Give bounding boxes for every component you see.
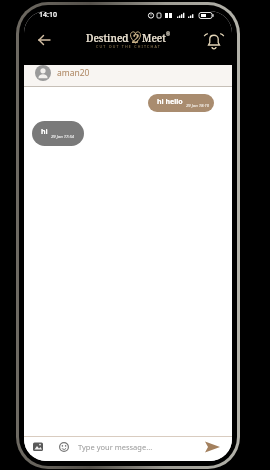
staticText: 14:10	[39, 11, 57, 20]
staticText: 29 Jan 18:10	[186, 103, 210, 109]
staticText: ®	[166, 31, 171, 38]
staticText: hi	[41, 127, 48, 137]
button[interactable]: hi	[32, 121, 84, 146]
staticText: 2	[132, 30, 139, 45]
staticText: 29 Jan 17:54	[51, 134, 75, 140]
button[interactable]	[203, 30, 225, 52]
staticText: Type your message...	[78, 442, 153, 452]
staticText: CUT OUT THE CHITCHAT	[96, 44, 161, 49]
staticText: Meet	[142, 31, 166, 45]
staticText: aman20	[57, 67, 90, 79]
button[interactable]: hi hello	[148, 94, 214, 112]
button[interactable]	[31, 440, 45, 454]
button[interactable]: Destined	[86, 30, 171, 50]
button[interactable]: aman20	[24, 65, 232, 86]
button[interactable]	[34, 29, 56, 51]
button[interactable]	[57, 440, 71, 454]
staticText: Destined	[86, 31, 129, 45]
staticText: hi hello	[157, 97, 183, 107]
button[interactable]	[199, 435, 223, 459]
button[interactable]: Type your message...	[78, 442, 199, 452]
